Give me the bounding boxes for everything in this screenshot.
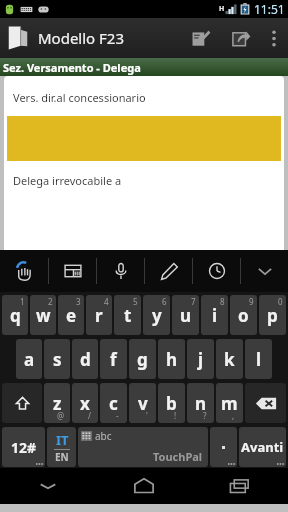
staticText: v <box>138 392 148 415</box>
button[interactable]: f <box>100 339 127 379</box>
staticText: 11:51 <box>254 1 285 17</box>
staticText: m <box>221 392 238 415</box>
staticText: - <box>116 410 119 421</box>
staticText: TouchPal <box>153 449 203 464</box>
button[interactable]: e <box>58 295 84 335</box>
staticText: 4 <box>104 296 109 307</box>
staticText: g <box>137 348 148 371</box>
button[interactable]: Gestures <box>0 250 48 292</box>
staticText: s <box>53 348 62 371</box>
button[interactable]: IT <box>47 427 76 467</box>
staticText: e <box>66 304 77 327</box>
staticText: y <box>152 304 162 327</box>
button[interactable]: a <box>16 339 42 379</box>
button[interactable]: Edit <box>180 18 220 58</box>
staticText: ! <box>174 410 177 421</box>
button[interactable]: Recent <box>193 250 240 292</box>
button[interactable]: g <box>129 339 156 379</box>
staticText: o <box>238 304 249 327</box>
button[interactable]: Backspace <box>245 383 286 423</box>
staticText: 2 <box>48 296 53 307</box>
staticText: t <box>124 304 132 327</box>
staticText: b <box>166 392 177 415</box>
staticText: ? <box>203 410 207 421</box>
button[interactable]: k <box>216 339 243 379</box>
staticText: x <box>80 392 90 415</box>
button[interactable]: b <box>158 383 185 423</box>
button[interactable] <box>210 427 237 467</box>
button[interactable]: u <box>172 295 199 335</box>
staticText: h <box>166 348 178 371</box>
button[interactable]: c <box>100 383 127 423</box>
staticText: ' <box>146 410 148 421</box>
staticText: 0 <box>278 296 283 307</box>
staticText: Modello F23 <box>38 28 125 48</box>
button[interactable]: 12# <box>2 427 45 467</box>
staticText: Vers. dir.al concessionario <box>13 90 146 105</box>
staticText: 7 <box>191 296 196 307</box>
staticText: z <box>53 392 62 415</box>
staticText: 9 <box>249 296 254 307</box>
staticText: H <box>219 4 225 14</box>
button[interactable]: x <box>72 383 98 423</box>
staticText: Sez. Versamento - Delega <box>3 60 141 75</box>
button[interactable]: n <box>187 383 214 423</box>
staticText: 3 <box>76 296 81 307</box>
button[interactable]: p <box>259 295 286 335</box>
button[interactable]: s <box>44 339 70 379</box>
button[interactable]: Home <box>96 468 192 504</box>
button[interactable]: i <box>201 295 228 335</box>
button[interactable]: Hide keyboard <box>241 250 288 292</box>
button[interactable]: m <box>216 383 243 423</box>
button[interactable]: Shift <box>2 383 42 423</box>
staticText: Avanti <box>241 438 284 456</box>
staticText: q <box>10 304 21 327</box>
button[interactable]: Voice input <box>97 250 144 292</box>
staticText: r <box>95 304 103 327</box>
button[interactable]: Recent apps <box>192 468 288 504</box>
button[interactable]: w <box>30 295 56 335</box>
staticText: 6 <box>162 296 167 307</box>
button[interactable]: Space <box>78 427 208 467</box>
button[interactable]: r <box>86 295 112 335</box>
button[interactable]: q <box>2 295 28 335</box>
staticText: @ <box>57 410 65 421</box>
button[interactable]: j <box>187 339 214 379</box>
button[interactable]: Hide keyboard <box>0 468 96 504</box>
button[interactable]: z <box>44 383 70 423</box>
staticText: f <box>110 348 117 371</box>
button[interactable]: Share <box>220 18 260 58</box>
staticText: 12# <box>11 438 37 457</box>
staticText: 1 <box>20 296 25 307</box>
button[interactable]: y <box>143 295 170 335</box>
button[interactable]: l <box>245 339 272 379</box>
staticText: EN <box>55 450 69 464</box>
button[interactable]: Handwriting <box>145 250 192 292</box>
staticText: 8 <box>220 296 225 307</box>
button[interactable]: More options <box>260 18 288 58</box>
staticText: a <box>24 348 35 371</box>
staticText: j <box>198 348 204 371</box>
button[interactable]: t <box>114 295 141 335</box>
staticText: d <box>80 348 91 371</box>
staticText: n <box>195 392 207 415</box>
staticText: , <box>232 410 235 421</box>
staticText: Delega irrevocabile a <box>13 173 122 188</box>
button[interactable]: Layout <box>49 250 96 292</box>
staticText: abc <box>95 429 112 443</box>
staticText: k <box>224 348 235 371</box>
button[interactable]: v <box>129 383 156 423</box>
button[interactable]: Avanti <box>239 427 286 467</box>
staticText: 5 <box>133 296 138 307</box>
button[interactable]: h <box>158 339 185 379</box>
button[interactable]: d <box>72 339 98 379</box>
staticText: p <box>267 304 278 327</box>
staticText: c <box>109 392 118 415</box>
button[interactable]: o <box>230 295 257 335</box>
staticText: i <box>212 304 218 327</box>
staticText: u <box>180 304 192 327</box>
staticText: w <box>36 304 51 327</box>
staticText: / <box>88 410 91 421</box>
staticText: l <box>256 348 262 371</box>
